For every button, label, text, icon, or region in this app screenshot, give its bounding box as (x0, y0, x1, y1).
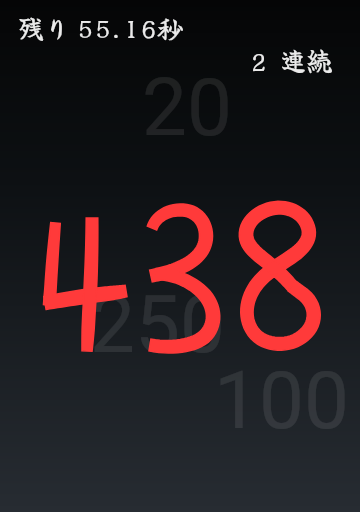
staticText: 2 連続 (250, 41, 333, 79)
staticText: 100 (214, 354, 349, 448)
button[interactable]: Answer board, tap to write (0, 0, 360, 512)
staticText: 250 (90, 278, 225, 372)
staticText: 20 (142, 61, 232, 155)
staticText: 残り 55.16秒 (18, 8, 184, 46)
